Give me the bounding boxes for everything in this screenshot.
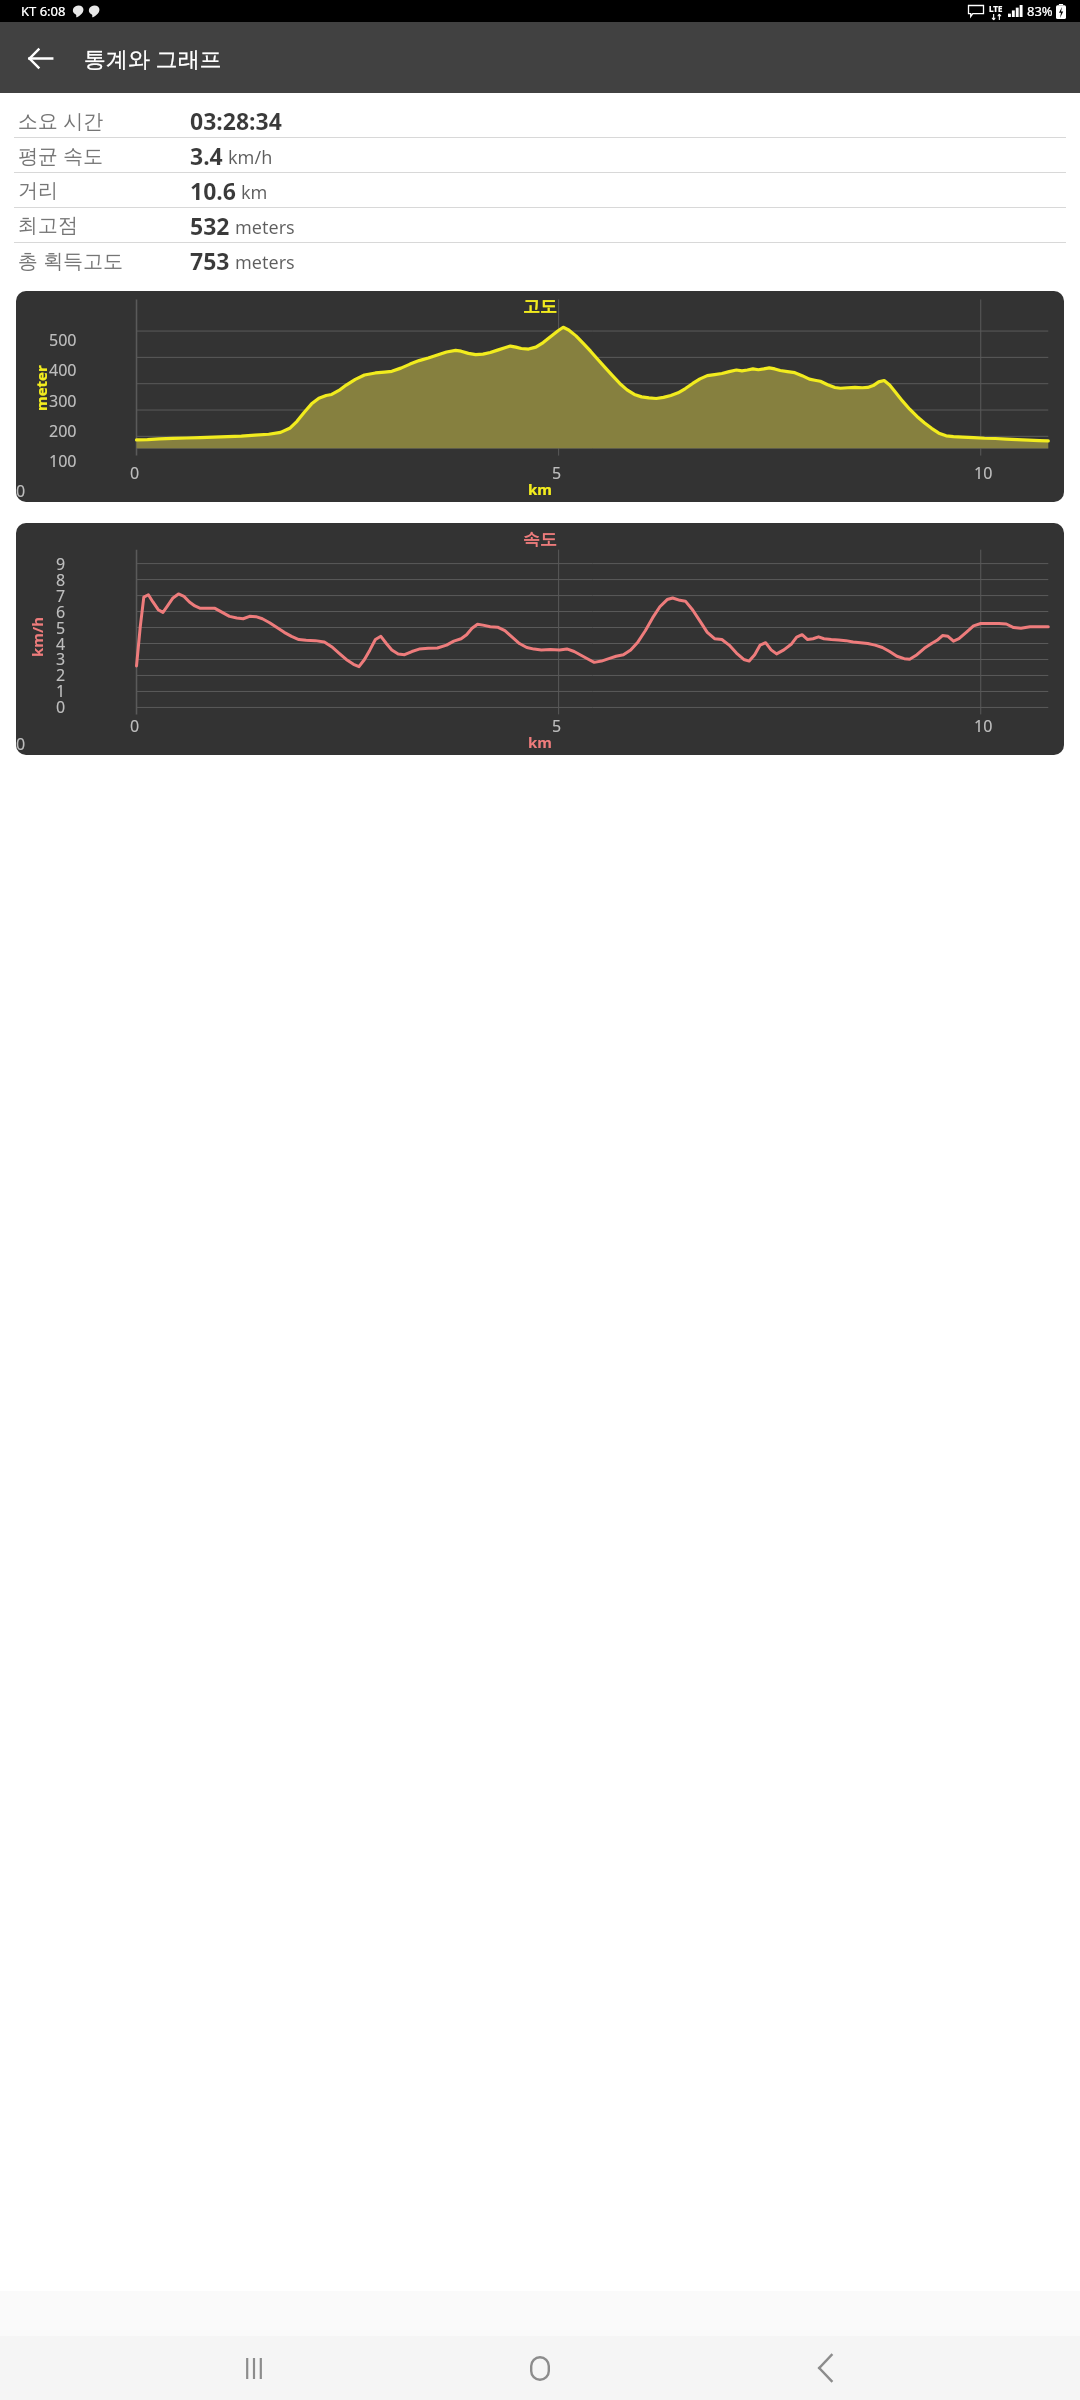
button[interactable]: Recent apps <box>222 2336 286 2400</box>
staticText: 0 <box>16 480 26 502</box>
staticText: 고도 <box>523 296 557 317</box>
staticText: 300 <box>49 390 77 412</box>
staticText: KT 6:08 <box>21 2 66 20</box>
button[interactable]: 총 획득고도 <box>0 243 1080 277</box>
staticText: 7 <box>56 585 66 607</box>
staticText: 10 <box>974 462 993 484</box>
staticText: 2 <box>56 664 66 686</box>
button[interactable]: Back <box>14 32 66 84</box>
staticText: 소요 시간 <box>18 107 104 134</box>
staticText: 83% <box>1027 2 1053 20</box>
staticText: 400 <box>49 359 77 381</box>
staticText: 3.4 <box>190 140 223 171</box>
staticText: 총 획득고도 <box>18 247 124 274</box>
staticText: 500 <box>49 329 77 351</box>
staticText: 10.6 <box>190 175 236 206</box>
staticText: km <box>241 180 268 205</box>
staticText: km/h <box>27 617 47 657</box>
staticText: 속도 <box>523 529 557 550</box>
staticText: 8 <box>56 569 66 591</box>
staticText: 최고점 <box>18 213 78 238</box>
staticText: 753 <box>190 245 230 276</box>
staticText: 거리 <box>18 178 58 203</box>
staticText: km <box>528 732 552 752</box>
button[interactable]: 거리 <box>0 173 1080 207</box>
button[interactable]: 소요 시간 <box>0 103 1080 137</box>
staticText: LTE <box>989 3 1003 14</box>
staticText: 03:28:34 <box>190 105 282 136</box>
staticText: 0 <box>130 462 140 484</box>
staticText: 6 <box>56 601 66 623</box>
staticText: 통계와 그래프 <box>84 43 222 73</box>
staticText: 100 <box>49 450 77 472</box>
button[interactable]: 고도 <box>16 291 1064 502</box>
button[interactable]: 최고점 <box>0 208 1080 242</box>
button[interactable]: Home <box>508 2336 572 2400</box>
staticText: 5 <box>56 617 66 639</box>
staticText: 4 <box>56 633 66 655</box>
staticText: km <box>528 479 552 499</box>
staticText: 평균 속도 <box>18 142 104 169</box>
staticText: 9 <box>56 553 66 575</box>
staticText: meter <box>31 365 51 411</box>
staticText: 0 <box>56 696 66 718</box>
staticText: km/h <box>228 145 273 170</box>
staticText: 5 <box>552 462 562 484</box>
staticText: meters <box>235 250 295 275</box>
button[interactable]: 평균 속도 <box>0 138 1080 172</box>
staticText: 0 <box>130 715 140 737</box>
staticText: 10 <box>974 715 993 737</box>
staticText: 1 <box>56 680 66 702</box>
button[interactable]: Back <box>794 2336 858 2400</box>
staticText: 5 <box>552 715 562 737</box>
staticText: meters <box>235 215 295 240</box>
staticText: 200 <box>49 420 77 442</box>
staticText: 0 <box>16 733 26 755</box>
staticText: 3 <box>56 648 66 670</box>
button[interactable]: 속도 <box>16 523 1064 755</box>
staticText: 532 <box>190 210 230 241</box>
